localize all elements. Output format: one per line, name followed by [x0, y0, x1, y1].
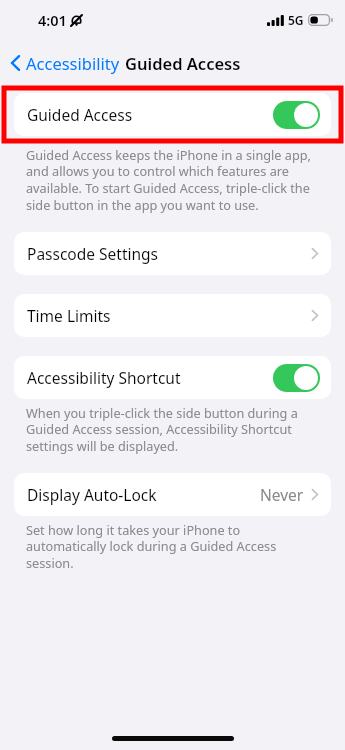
button[interactable]: Accessibility — [8, 48, 122, 78]
staticText: Accessibility — [26, 52, 120, 74]
other: Toggle — [273, 101, 320, 129]
button[interactable]: Accessibility Shortcut — [14, 356, 331, 399]
staticText: When you triple-click the side button du… — [26, 404, 319, 455]
staticText: Set how long it takes your iPhone to aut… — [26, 521, 319, 572]
staticText: Guided Access — [27, 104, 133, 125]
staticText: Guided Access — [125, 52, 241, 74]
staticText: 4:01 — [38, 10, 67, 30]
staticText: Guided Access keeps the iPhone in a sing… — [26, 146, 319, 214]
button[interactable]: Time Limits — [14, 294, 331, 337]
staticText: Never — [260, 484, 304, 505]
staticText: Display Auto-Lock — [27, 484, 157, 505]
staticText: Time Limits — [27, 305, 111, 326]
staticText: Accessibility Shortcut — [27, 367, 181, 388]
button[interactable]: Display Auto-Lock — [14, 473, 331, 516]
button[interactable]: Passcode Settings — [14, 232, 331, 275]
other: Toggle — [273, 364, 320, 392]
button[interactable]: Guided Access — [14, 93, 331, 136]
staticText: 5G — [288, 12, 304, 28]
staticText: Passcode Settings — [27, 243, 159, 264]
